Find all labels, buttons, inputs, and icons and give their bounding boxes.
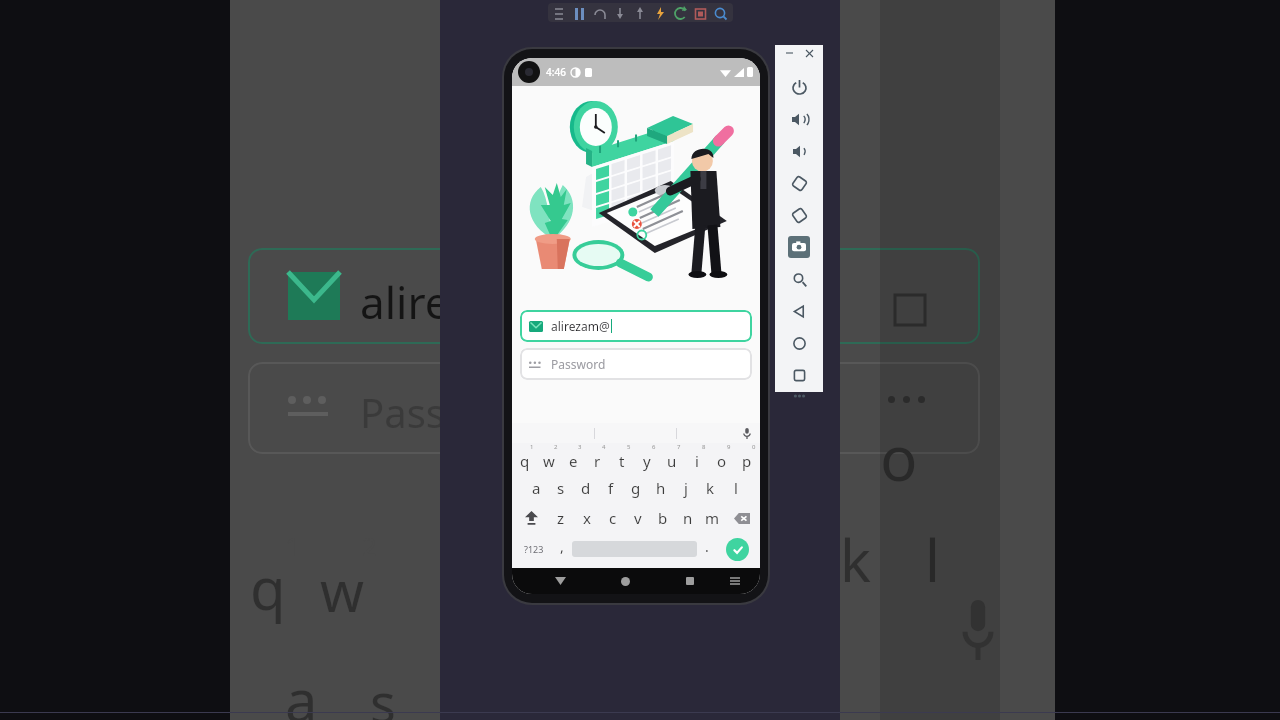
button[interactable]: Pause [574,6,587,19]
staticText: 1 [530,443,534,451]
staticText: o [717,451,727,471]
button[interactable]: ?123 [515,533,552,565]
button[interactable]: Shift [514,503,548,533]
button[interactable]: Step over [594,6,607,19]
button[interactable]: Backspace [725,503,758,533]
button[interactable]: g [623,473,648,503]
button[interactable]: v [625,503,650,533]
staticText: 8 [702,443,706,451]
button[interactable]: , [552,533,572,565]
button[interactable]: Rotate left [788,172,810,194]
button[interactable]: Home [788,332,810,354]
button[interactable]: c [600,503,625,533]
staticText: , [560,537,564,556]
button[interactable]: l [723,473,748,503]
staticText: g [631,478,641,498]
staticText: . [705,537,709,556]
button[interactable]: . [697,533,717,565]
button[interactable]: Stop [694,6,707,19]
staticText: r [594,451,601,471]
button[interactable]: Menu [554,6,567,19]
button[interactable]: Run to cursor [654,6,667,19]
staticText: i [695,451,699,471]
button[interactable]: f [598,473,623,503]
button[interactable]: Volume up [788,108,810,130]
button[interactable]: Back [788,300,810,322]
staticText: f [608,478,614,498]
button[interactable]: j [673,473,698,503]
staticText: 9 [727,443,731,451]
button[interactable]: Recents [677,568,703,594]
button[interactable]: Minimize [783,47,795,59]
staticText: s [557,478,565,498]
staticText: e [569,451,578,471]
button[interactable]: n [675,503,700,533]
staticText: q [520,451,530,471]
button[interactable]: Done [726,538,749,561]
staticText: c [609,508,617,528]
staticText: 0 [752,443,756,451]
button[interactable]: 5 [609,443,634,473]
button[interactable]: s [548,473,573,503]
button[interactable]: 4 [585,443,609,473]
staticText: q [250,548,286,627]
staticText: k [706,478,715,498]
button[interactable]: Volume down [788,140,810,162]
button[interactable]: Step out [634,6,647,19]
staticText: 4:46 [546,65,566,79]
button[interactable]: Overview [788,364,810,386]
button[interactable]: Screenshot [788,236,810,258]
staticText: d [581,478,591,498]
staticText: 5 [627,443,631,451]
button[interactable]: Home [612,568,638,594]
staticText: z [557,508,565,528]
button[interactable]: 8 [684,443,709,473]
button[interactable]: z [548,503,574,533]
button[interactable]: 1 [513,443,537,473]
button[interactable]: Voice input [738,424,756,442]
button[interactable]: b [650,503,675,533]
staticText: p [742,451,752,471]
staticText: k [840,520,871,599]
button[interactable]: alirezam@ [520,310,752,342]
staticText: u [667,451,677,471]
staticText: ?123 [524,543,544,555]
button[interactable]: Zoom [788,268,810,290]
button[interactable]: Resume [674,6,687,19]
button[interactable]: 0 [734,443,759,473]
button[interactable]: Inspect [714,6,727,19]
staticText: a [285,660,318,720]
button[interactable]: Close keyboard [547,568,573,594]
staticText: Password [551,356,606,372]
button[interactable]: m [700,503,725,533]
button[interactable]: 2 [537,443,561,473]
button[interactable]: 7 [659,443,684,473]
staticText: 4 [602,443,606,451]
staticText: Passw [360,385,477,439]
button[interactable]: 6 [634,443,659,473]
button[interactable]: Power [788,76,810,98]
button[interactable]: Rotate right [788,204,810,226]
staticText: j [684,478,688,498]
button[interactable]: Step into [614,6,627,19]
button[interactable]: d [573,473,598,503]
button[interactable]: Close [803,47,815,59]
button[interactable]: h [648,473,673,503]
button[interactable]: k [698,473,723,503]
staticText: l [734,478,738,498]
staticText: alirezam@ [551,318,610,334]
button[interactable]: 3 [561,443,585,473]
button[interactable]: x [574,503,600,533]
button[interactable]: a [524,473,548,503]
staticText: s [370,665,396,720]
button[interactable]: Switch keyboard [724,570,746,592]
button[interactable]: Password [520,348,752,380]
staticText: b [658,508,668,528]
button[interactable]: 9 [709,443,734,473]
staticText: w [543,451,555,471]
